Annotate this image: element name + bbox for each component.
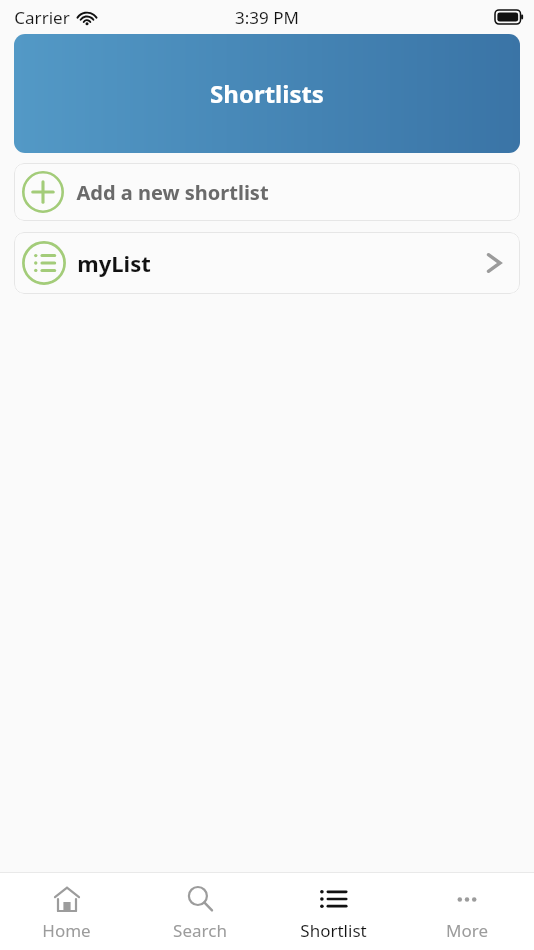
staticText: 3:39 PM	[235, 6, 299, 29]
other: Shortlist	[318, 884, 348, 914]
button[interactable]: myList	[14, 232, 520, 294]
other: Search	[185, 884, 215, 914]
button[interactable]: Shortlist	[266, 873, 400, 950]
button[interactable]: Add a new shortlist	[14, 163, 520, 221]
staticText: myList	[77, 248, 151, 278]
other: Home	[52, 884, 82, 914]
staticText: Add a new shortlist	[76, 179, 269, 206]
button[interactable]: Shortlists	[14, 34, 520, 153]
button[interactable]: More	[400, 873, 534, 950]
staticText: Search	[173, 919, 227, 942]
staticText: Shortlist	[300, 919, 367, 942]
staticText: More	[446, 919, 488, 942]
staticText: Home	[42, 919, 91, 942]
staticText: Shortlists	[210, 77, 324, 110]
staticText: Carrier	[14, 6, 70, 29]
other: More	[452, 884, 482, 914]
button[interactable]: Search	[133, 873, 266, 950]
button[interactable]: Home	[0, 873, 133, 950]
